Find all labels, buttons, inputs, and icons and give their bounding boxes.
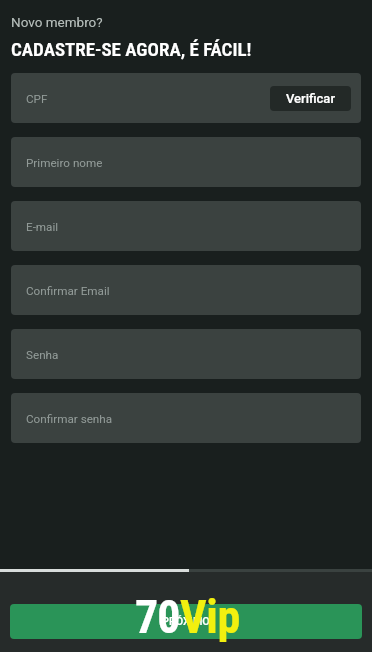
staticText: PRÓXIMO xyxy=(162,615,210,628)
staticText: Primeiro nome xyxy=(26,156,103,170)
staticText: 70 xyxy=(135,590,180,644)
staticText: Novo membro? xyxy=(11,14,103,30)
button[interactable]: PRÓXIMO xyxy=(10,604,362,639)
button[interactable]: Senha xyxy=(11,329,361,379)
button[interactable]: CPF xyxy=(11,73,361,123)
button[interactable]: Verificar xyxy=(270,86,351,111)
staticText: E-mail xyxy=(26,220,59,234)
button[interactable]: E-mail xyxy=(11,201,361,251)
staticText: Vip xyxy=(180,590,241,644)
staticText: Confirmar senha xyxy=(26,412,113,426)
button[interactable]: Confirmar senha xyxy=(11,393,361,443)
staticText: Senha xyxy=(26,348,59,362)
staticText: Confirmar Email xyxy=(26,284,110,298)
staticText: Verificar xyxy=(286,91,335,106)
button[interactable]: Confirmar Email xyxy=(11,265,361,315)
staticText: CPF xyxy=(26,92,48,106)
button[interactable]: Primeiro nome xyxy=(11,137,361,187)
staticText: CADASTRE-SE AGORA, É FÁCIL! xyxy=(11,38,252,60)
